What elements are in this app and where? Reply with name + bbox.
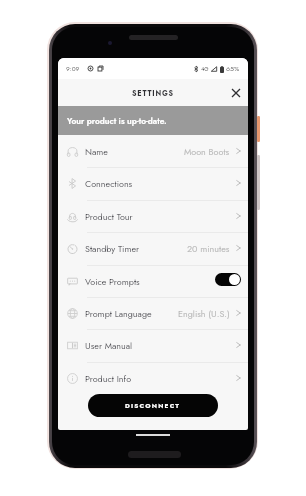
button[interactable]: Product Info bbox=[58, 362, 248, 394]
button[interactable]: Voice Prompts bbox=[58, 265, 248, 297]
staticText: Name bbox=[85, 145, 108, 158]
staticText: DISCONNECT bbox=[125, 401, 181, 410]
staticText: User Manual bbox=[85, 339, 133, 352]
staticText: Connections bbox=[85, 177, 133, 190]
button[interactable]: Connections bbox=[58, 167, 248, 199]
staticText: Moon Boots bbox=[184, 145, 230, 158]
staticText: 20 minutes bbox=[187, 242, 230, 255]
button[interactable]: Close bbox=[226, 83, 246, 103]
button[interactable]: Product Tour bbox=[58, 200, 248, 232]
staticText: Your product is up-to-date. bbox=[67, 115, 167, 127]
staticText: Product Tour bbox=[85, 210, 133, 223]
staticText: Standby Timer bbox=[85, 242, 140, 255]
staticText: Product Info bbox=[85, 372, 132, 385]
button[interactable]: Name bbox=[58, 135, 248, 167]
staticText: SETTINGS bbox=[132, 88, 174, 98]
staticText: 65% bbox=[226, 64, 240, 74]
staticText: 4G bbox=[201, 65, 209, 73]
staticText: Prompt Language bbox=[85, 307, 152, 320]
button[interactable]: Prompt Language bbox=[58, 297, 248, 329]
button[interactable]: DISCONNECT bbox=[88, 394, 218, 417]
staticText: Voice Prompts bbox=[85, 275, 140, 288]
button[interactable]: Standby Timer bbox=[58, 232, 248, 264]
button[interactable]: User Manual bbox=[58, 329, 248, 361]
staticText: English (U.S.) bbox=[178, 307, 230, 320]
staticText: 9:09 bbox=[66, 64, 80, 73]
